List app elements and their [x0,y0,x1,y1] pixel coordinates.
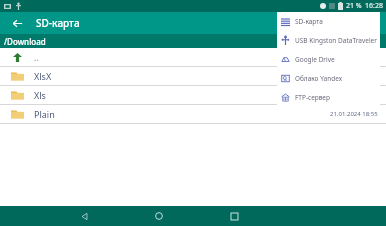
button[interactable]: FTP-сервер [277,88,380,107]
button[interactable]: /Download [0,34,386,48]
staticText: SD-карта [295,17,323,26]
button[interactable]: .. [0,48,386,66]
button[interactable]: Back [74,206,94,226]
button[interactable]: XlsX [0,67,386,85]
button[interactable]: Облако Yandex [277,69,380,88]
button[interactable]: Plain [0,105,386,123]
button[interactable]: USB Kingston DataTraveler 3.0 [277,31,380,50]
staticText: Облако Yandex [295,74,343,83]
staticText: Plain [34,108,55,120]
button[interactable]: Recents [224,206,244,226]
button[interactable]: Xls [0,86,386,104]
staticText: 21.01.2024 18:55 [330,72,378,80]
button[interactable]: Google Drive [277,50,380,69]
button[interactable]: Back [8,14,26,32]
staticText: SD-карта [36,16,80,30]
staticText: FTP-сервер [295,93,330,102]
button[interactable]: SD-карта [277,12,380,31]
staticText: /Download [4,36,46,47]
staticText: XlsX [34,70,52,82]
staticText: USB Kingston DataTraveler 3.0 [295,36,380,45]
button[interactable]: Home [149,206,169,226]
staticText: 16:28 [365,1,383,11]
staticText: Xls [34,89,46,101]
staticText: 21 % [346,1,362,11]
staticText: Google Drive [295,55,335,64]
staticText: 21.01.2024 18:55 [330,110,378,118]
staticText: .. [34,51,39,63]
